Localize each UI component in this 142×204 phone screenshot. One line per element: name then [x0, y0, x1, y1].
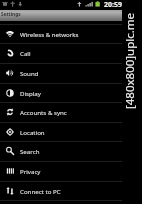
button[interactable]: Sound: [0, 63, 122, 83]
button[interactable]: Privacy: [0, 161, 122, 181]
staticText: Sound: [20, 69, 39, 77]
staticText: Settings: [1, 11, 21, 18]
staticText: Display: [20, 89, 41, 97]
button[interactable]: Display: [0, 83, 122, 103]
staticText: Call: [20, 49, 31, 57]
button[interactable]: Wireless & networks: [0, 24, 122, 44]
staticText: Connect to PC: [20, 187, 61, 195]
staticText: [480x800]uplc.me: [122, 6, 138, 116]
staticText: Accounts & sync: [20, 108, 67, 116]
button[interactable]: Search: [0, 141, 122, 161]
button[interactable]: Accounts & sync: [0, 102, 122, 122]
staticText: Privacy: [20, 167, 41, 175]
button[interactable]: Call: [0, 43, 122, 63]
staticText: Search: [20, 147, 40, 155]
staticText: Wireless & networks: [20, 30, 79, 38]
button[interactable]: Location: [0, 122, 122, 142]
staticText: 20:59: [104, 0, 122, 9]
staticText: Location: [20, 128, 45, 136]
button[interactable]: Connect to PC: [0, 181, 122, 201]
